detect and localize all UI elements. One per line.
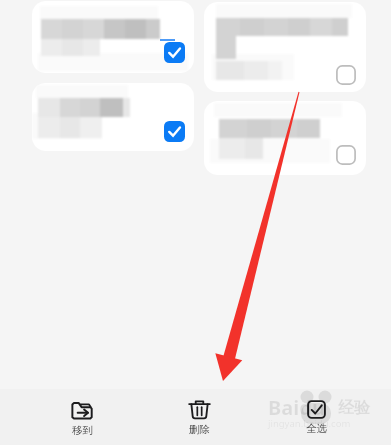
button[interactable]: 移到 xyxy=(36,389,128,445)
button[interactable]: Not selected xyxy=(336,65,356,85)
button[interactable] xyxy=(32,83,194,151)
button[interactable] xyxy=(204,2,366,92)
staticText: 移到 xyxy=(72,424,93,437)
staticText: 删除 xyxy=(189,423,210,436)
staticText: 全选 xyxy=(306,422,327,435)
button[interactable]: Selected xyxy=(164,42,185,63)
button[interactable] xyxy=(204,101,366,175)
button[interactable]: 删除 xyxy=(153,389,245,445)
staticText: jingyan.baidu.com xyxy=(268,417,351,430)
button[interactable]: Not selected xyxy=(336,145,356,165)
staticText: 经验 xyxy=(338,398,370,418)
staticText: Baidu xyxy=(268,394,325,421)
button[interactable] xyxy=(32,1,194,73)
button[interactable]: Selected xyxy=(164,121,185,142)
button[interactable]: 全选 xyxy=(270,389,362,445)
